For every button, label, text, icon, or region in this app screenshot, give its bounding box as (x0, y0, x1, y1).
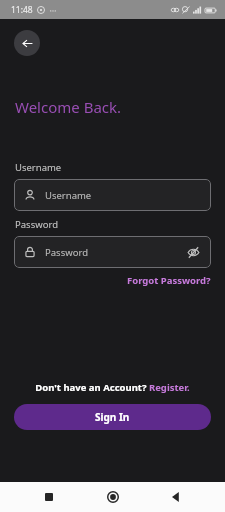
button[interactable]: Back (161, 482, 191, 512)
staticText: Username (15, 161, 62, 174)
button[interactable]: Don't have an Account? Register. (35, 381, 190, 394)
staticText: Password (45, 246, 88, 259)
button[interactable]: Forgot Password? (127, 274, 211, 287)
staticText: Forgot Password? (127, 274, 211, 287)
button[interactable]: Back (14, 30, 40, 56)
button[interactable]: Username (14, 179, 211, 211)
staticText: 11:48 (11, 4, 33, 16)
staticText: Welcome Back. (15, 97, 122, 117)
staticText: Username (45, 189, 92, 202)
staticText: Password (15, 218, 58, 231)
button[interactable]: Password (14, 236, 211, 268)
button[interactable]: Toggle password visibility (186, 245, 201, 260)
staticText: Sign In (95, 410, 130, 424)
button[interactable]: Sign In (14, 404, 211, 430)
button[interactable]: Recent apps (34, 482, 64, 512)
button[interactable]: Home (98, 482, 128, 512)
